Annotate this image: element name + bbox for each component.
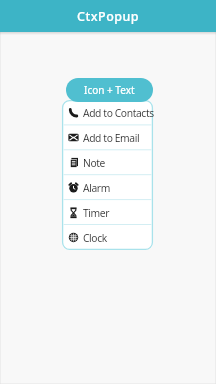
- staticText: Alarm: [83, 181, 110, 195]
- staticText: Add to Email: [83, 131, 140, 145]
- staticText: Clock: [83, 231, 107, 245]
- staticText: Add to Contacts: [83, 106, 153, 120]
- button[interactable]: Add to Email: [62, 125, 153, 150]
- button[interactable]: Note: [62, 150, 153, 175]
- staticText: CtxPopup: [77, 8, 140, 25]
- button[interactable]: Alarm: [62, 175, 153, 200]
- staticText: Note: [83, 156, 105, 170]
- staticText: Icon + Text: [84, 83, 135, 97]
- button[interactable]: Add to Contacts: [62, 100, 153, 125]
- staticText: Timer: [83, 206, 110, 220]
- button[interactable]: Timer: [62, 200, 153, 225]
- button[interactable]: Clock: [62, 225, 153, 250]
- button[interactable]: Icon + Text: [66, 78, 153, 102]
